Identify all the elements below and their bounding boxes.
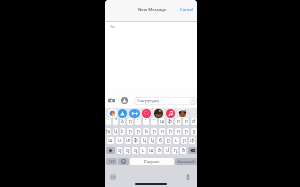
staticText: կ — [143, 138, 146, 143]
button[interactable]: Shift — [106, 147, 115, 154]
staticText: ղ — [174, 148, 177, 153]
button[interactable]: զ — [124, 147, 130, 154]
button[interactable]: iMessage app 3 — [129, 109, 140, 118]
staticText: ւ — [175, 138, 177, 143]
staticText: զ — [118, 148, 121, 153]
button[interactable]: ղ — [172, 147, 178, 154]
staticText: ձ — [121, 119, 124, 124]
staticText: տ — [126, 138, 131, 143]
button[interactable]: ո — [175, 128, 181, 135]
staticText: ր — [137, 129, 140, 134]
button[interactable]: ֆ — [167, 118, 173, 125]
staticText: ՝ — [145, 119, 147, 124]
staticText: Հաղորդագ — [137, 99, 159, 103]
button[interactable]: փ — [189, 137, 195, 144]
staticText: ե — [145, 129, 148, 134]
button[interactable]: Հաղորդագ — [134, 97, 197, 105]
button[interactable]: ծ — [180, 147, 186, 154]
staticText: ծ — [158, 148, 161, 153]
staticText: ծ — [182, 148, 185, 153]
button[interactable]: ր — [183, 128, 189, 135]
button[interactable]: տ — [125, 137, 131, 144]
button[interactable]: ջ — [191, 128, 197, 135]
staticText: ա — [160, 119, 165, 124]
button[interactable]: խ — [106, 128, 111, 135]
button[interactable]: ֆ — [133, 137, 139, 144]
staticText: ր — [183, 138, 186, 143]
button[interactable]: մ — [164, 147, 170, 154]
staticText: ո — [177, 119, 180, 124]
button[interactable]: ՛ — [106, 118, 111, 125]
button[interactable]: ւ — [140, 147, 146, 154]
staticText: ֆ — [168, 119, 172, 124]
staticText: ճ — [159, 138, 162, 143]
button[interactable]: iMessage app 5 — [154, 109, 163, 118]
button[interactable]: ո — [183, 118, 189, 125]
button[interactable]: ձ — [120, 118, 125, 125]
button[interactable]: ո — [159, 128, 165, 135]
button[interactable]: կ — [113, 128, 118, 135]
staticText: ա — [149, 148, 154, 153]
button[interactable]: ՞ — [113, 118, 118, 125]
button[interactable]: iMessage app 4 — [142, 109, 151, 118]
button[interactable]: Cancel — [177, 3, 197, 15]
button[interactable]: կ — [141, 137, 147, 144]
staticText: կ — [114, 129, 117, 134]
button[interactable]: Take photo — [107, 96, 116, 105]
staticText: ր — [153, 129, 156, 134]
button[interactable]: ր — [181, 137, 187, 144]
button[interactable]: ր — [127, 128, 133, 135]
button[interactable]: iMessage app 2 — [118, 109, 127, 118]
button[interactable]: ը — [165, 137, 171, 144]
button[interactable]: ր — [127, 118, 133, 125]
button[interactable]: ո — [175, 118, 181, 125]
staticText: է — [121, 129, 124, 134]
button[interactable]: ՚ — [135, 118, 141, 125]
staticText: ո — [177, 129, 180, 134]
staticText: New Message — [138, 6, 167, 12]
staticText: ո — [185, 119, 188, 124]
button[interactable]: ւ — [173, 137, 179, 144]
button[interactable]: ա — [148, 147, 154, 154]
staticText: զ — [134, 148, 137, 153]
staticText: ւ — [142, 148, 144, 153]
button[interactable]: Delete — [188, 147, 197, 154]
button[interactable]: App store — [120, 96, 129, 105]
button[interactable]: ճ — [157, 137, 163, 144]
staticText: ա — [108, 138, 113, 143]
staticText: ՛ — [108, 119, 110, 124]
button[interactable]: ծ — [156, 147, 162, 154]
button[interactable]: զ — [117, 147, 122, 154]
staticText: ր — [129, 129, 132, 134]
button[interactable]: Change keyboard — [108, 172, 117, 181]
staticText: խ — [106, 129, 111, 134]
button[interactable]: ս — [116, 137, 123, 144]
button[interactable]: ՜ — [151, 118, 157, 125]
button[interactable]: Վերադարձ — [175, 158, 197, 165]
button[interactable]: ե — [143, 128, 149, 135]
staticText: ո — [161, 129, 164, 134]
staticText: կ — [151, 138, 154, 143]
button[interactable]: ա — [159, 118, 165, 125]
button[interactable]: To: — [105, 22, 197, 32]
staticText: ր — [185, 129, 188, 134]
staticText: ֆ — [134, 138, 138, 143]
button[interactable]: 123 — [106, 158, 117, 165]
button[interactable]: Dictate — [183, 172, 192, 181]
button[interactable]: ա — [107, 137, 114, 144]
button[interactable]: ի — [167, 128, 173, 135]
button[interactable]: iMessage app 6 — [166, 109, 175, 118]
button[interactable]: iMessage app 1 — [108, 109, 117, 118]
button[interactable]: iMessage app 7 — [178, 109, 187, 118]
button[interactable]: ր — [135, 128, 141, 135]
button[interactable]: ր — [151, 128, 157, 135]
button[interactable]: ՝ — [143, 118, 149, 125]
button[interactable]: ժ — [191, 118, 197, 125]
button[interactable]: է — [120, 128, 125, 135]
button[interactable]: Emoji — [118, 158, 129, 165]
button[interactable]: Բացատ — [130, 158, 174, 165]
staticText: փ — [190, 138, 195, 143]
staticText: ի — [169, 129, 172, 134]
button[interactable]: կ — [149, 137, 155, 144]
button[interactable]: զ — [132, 147, 138, 154]
